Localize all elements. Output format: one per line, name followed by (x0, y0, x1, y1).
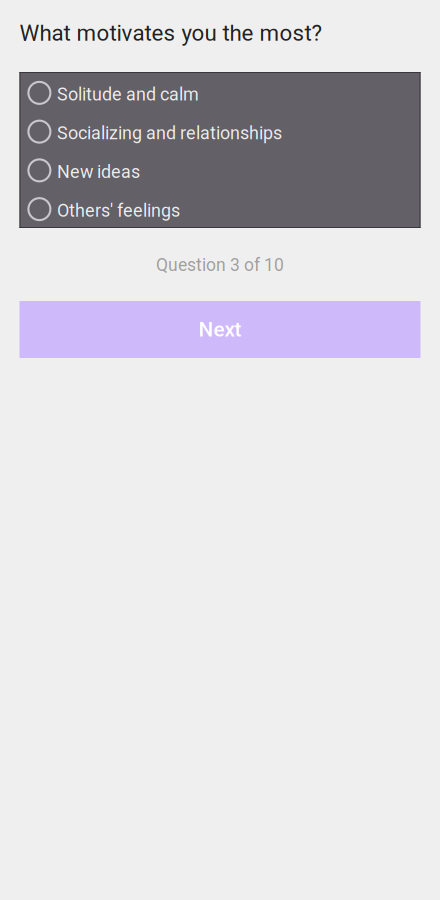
staticText: What motivates you the most? (19, 20, 322, 46)
staticText: Socializing and relationships (57, 123, 282, 144)
button[interactable]: Socializing and relationships (19, 112, 420, 151)
staticText: Next (198, 317, 241, 342)
staticText: Solitude and calm (57, 84, 199, 105)
staticText: Question 3 of 10 (156, 255, 284, 275)
button[interactable]: Solitude and calm (19, 73, 420, 112)
staticText: Others' feelings (57, 200, 180, 221)
button[interactable]: Others' feelings (19, 190, 420, 229)
button[interactable]: Next (19, 301, 420, 358)
button[interactable]: New ideas (19, 151, 420, 190)
staticText: New ideas (57, 161, 140, 182)
